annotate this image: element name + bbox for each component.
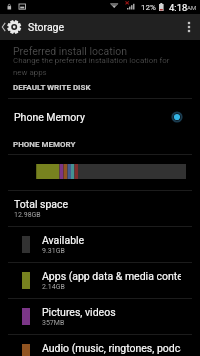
button[interactable]: Navigate up xyxy=(0,14,28,40)
staticText: AM xyxy=(187,4,197,11)
button[interactable]: Audio (music, ringtones, podcasts) xyxy=(0,334,200,356)
staticText: Phone Memory xyxy=(14,111,85,123)
button[interactable]: Pictures, videos xyxy=(0,298,200,334)
staticText: DEFAULT WRITE DISK xyxy=(13,83,91,92)
button[interactable]: Preferred install location xyxy=(0,40,200,84)
staticText: Audio (music, ringtones, podcasts) xyxy=(42,342,181,354)
staticText: 12.98GB xyxy=(14,211,41,219)
button[interactable]: Total space xyxy=(0,190,200,226)
staticText: Preferred install location xyxy=(13,45,128,57)
staticText: Available xyxy=(42,234,85,246)
staticText: PHONE MEMORY xyxy=(13,140,76,149)
staticText: 357MB xyxy=(42,319,65,327)
button[interactable]: Phone Memory xyxy=(0,99,200,135)
staticText: Apps (app data & media content) xyxy=(42,270,181,282)
button[interactable]: More options xyxy=(178,14,200,40)
staticText: 9.31GB xyxy=(42,247,65,255)
staticText: 12% xyxy=(141,3,156,12)
staticText: Total space xyxy=(14,198,69,210)
staticText: 4:18 xyxy=(169,2,188,13)
staticText: Pictures, videos xyxy=(42,306,116,318)
staticText: 2.14GB xyxy=(42,283,65,291)
button[interactable]: Apps (app data & media content) xyxy=(0,262,200,298)
staticText: Storage xyxy=(28,21,65,33)
staticText: Change the preferred installation locati… xyxy=(13,56,175,77)
button[interactable]: Available xyxy=(0,226,200,262)
